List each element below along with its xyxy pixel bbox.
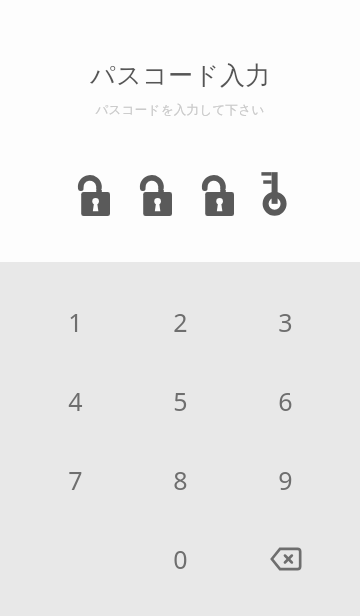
button[interactable]: 1	[22, 282, 128, 361]
button[interactable]: Backspace	[233, 519, 338, 598]
staticText: 9	[278, 463, 293, 497]
button[interactable]: 9	[233, 440, 338, 519]
staticText: 5	[173, 384, 188, 418]
staticText: パスコードを入力して下さい	[95, 102, 265, 118]
staticText: 4	[68, 384, 83, 418]
button[interactable]: 5	[128, 361, 233, 440]
staticText: 3	[278, 305, 293, 339]
button[interactable]: 2	[128, 282, 233, 361]
button[interactable]: 6	[233, 361, 338, 440]
staticText: 7	[68, 463, 83, 497]
button[interactable]: 7	[22, 440, 128, 519]
button[interactable]: 8	[128, 440, 233, 519]
staticText: 6	[278, 384, 293, 418]
staticText: 1	[68, 305, 83, 339]
button[interactable]: 3	[233, 282, 338, 361]
staticText: 0	[173, 542, 188, 576]
staticText: 2	[173, 305, 188, 339]
staticText: 8	[173, 463, 188, 497]
staticText: パスコード入力	[90, 60, 271, 91]
button[interactable]: 0	[128, 519, 233, 598]
button[interactable]: 4	[22, 361, 128, 440]
